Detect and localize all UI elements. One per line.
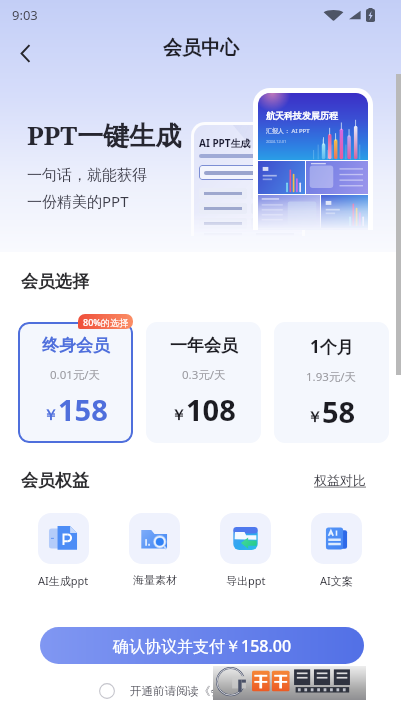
staticText: 终身会员 <box>42 335 110 356</box>
button[interactable]: Agree to terms <box>95 679 119 703</box>
staticText: 会员中心 <box>163 36 239 60</box>
staticText: 确认协议并支付￥158.00 <box>113 635 292 657</box>
staticText: 汇报人： AI PPT <box>266 127 310 135</box>
staticText: 80%的选择 <box>83 316 128 328</box>
staticText: 2024.12.01 <box>266 139 287 144</box>
staticText: 海量素材 <box>133 573 177 587</box>
button[interactable]: AI生成ppt <box>38 513 89 588</box>
staticText: 导出ppt <box>226 573 266 588</box>
staticText: AI文案 <box>320 573 353 588</box>
staticText: 1个月 <box>310 335 354 358</box>
staticText: 开通前请阅读《会员服务协议》 <box>130 684 291 698</box>
staticText: ￥ <box>171 406 186 425</box>
staticText: ￥ <box>43 406 58 425</box>
staticText: 会员选择 <box>21 271 89 292</box>
staticText: 会员权益 <box>21 470 89 491</box>
staticText: ￥ <box>307 408 322 427</box>
button[interactable]: 1个月 <box>274 322 389 443</box>
staticText: 一份精美的PPT <box>27 191 129 211</box>
button[interactable]: Back <box>6 34 44 72</box>
staticText: 58 <box>322 392 356 431</box>
staticText: 9:03 <box>12 6 38 24</box>
staticText: 0.3元/天 <box>182 367 226 383</box>
staticText: 1.93元/天 <box>306 369 357 385</box>
button[interactable]: 权益对比 <box>314 472 366 488</box>
button[interactable]: 海量素材 <box>129 513 180 587</box>
staticText: 航天科技发展历程 <box>266 110 338 121</box>
staticText: 108 <box>186 390 236 429</box>
button[interactable]: 导出ppt <box>220 513 271 588</box>
staticText: PPT一键生成 <box>27 117 182 153</box>
staticText: 一年会员 <box>170 335 238 356</box>
staticText: 158 <box>58 390 108 429</box>
staticText: AI PPT生成 <box>199 136 251 150</box>
button[interactable]: AI文案 <box>311 513 362 588</box>
button[interactable]: 确认协议并支付￥158.00 <box>40 627 364 664</box>
staticText: 0.01元/天 <box>50 367 101 383</box>
button[interactable]: 一年会员 <box>146 322 261 443</box>
button[interactable]: 终身会员 <box>18 322 133 443</box>
staticText: AI生成ppt <box>38 573 89 588</box>
staticText: 一句话，就能获得 <box>27 166 147 185</box>
